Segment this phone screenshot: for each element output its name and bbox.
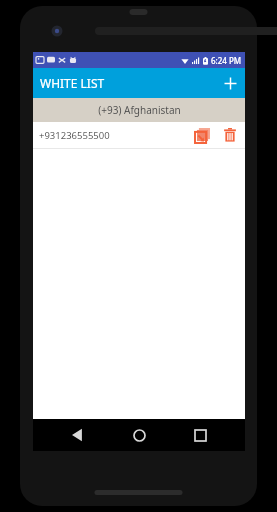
- button[interactable]: Recents: [184, 419, 216, 451]
- button[interactable]: Home: [123, 419, 155, 451]
- staticText: (+93) Afghanistan: [98, 103, 181, 117]
- staticText: +931236555500: [39, 129, 191, 142]
- button[interactable]: Add: [215, 68, 245, 98]
- button[interactable]: +931236555500: [33, 122, 245, 148]
- button[interactable]: Back: [62, 419, 94, 451]
- button[interactable]: Edit: [191, 124, 213, 146]
- button[interactable]: Delete: [219, 124, 241, 146]
- button[interactable]: (+93) Afghanistan: [33, 98, 245, 122]
- staticText: 6:24 PM: [211, 55, 242, 66]
- staticText: WHITE LIST: [40, 75, 105, 91]
